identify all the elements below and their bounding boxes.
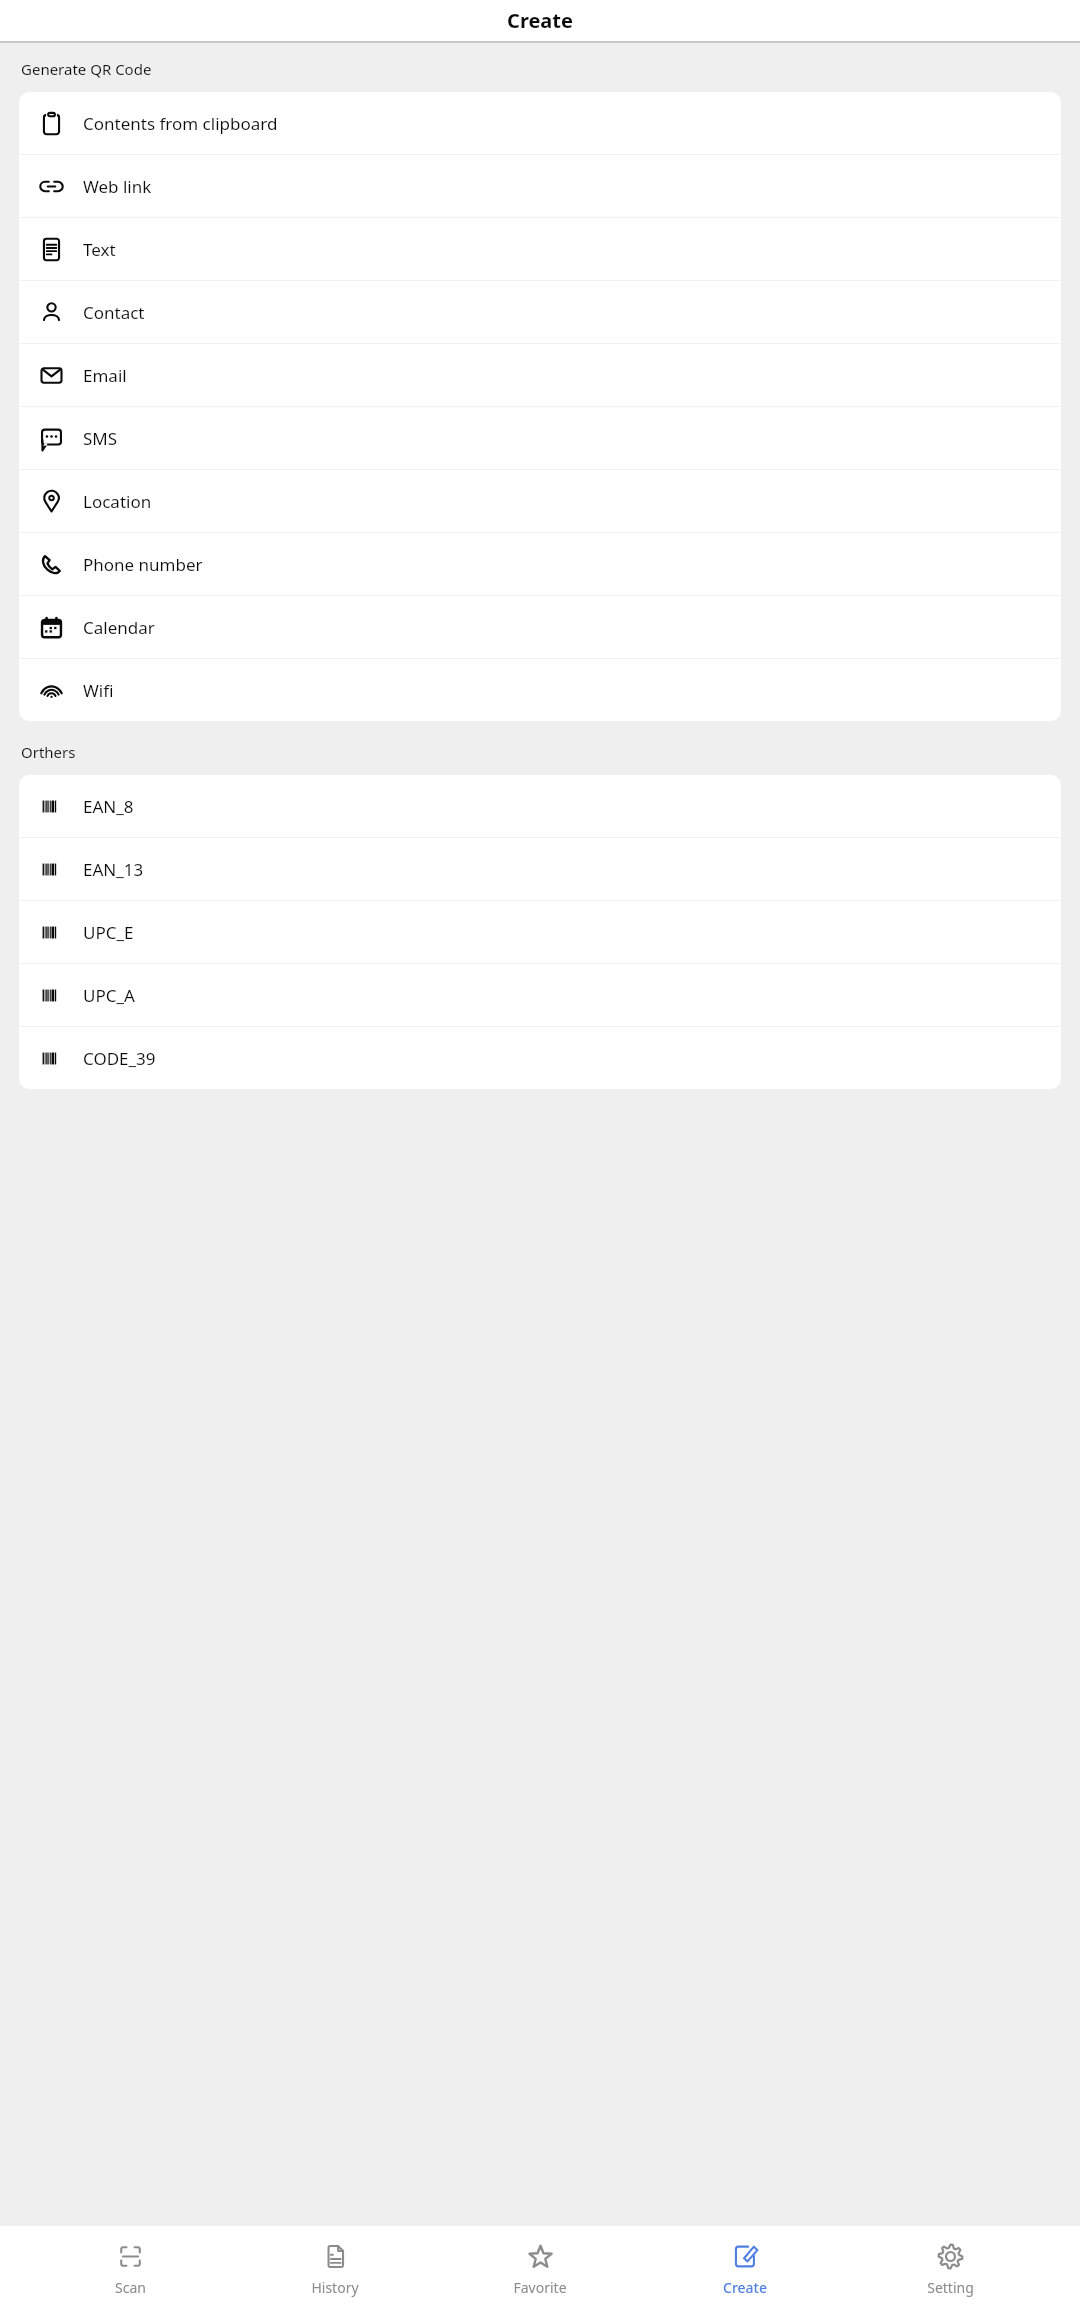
button[interactable]: Email (19, 344, 1061, 406)
staticText: Contact (83, 301, 145, 324)
staticText: Contents from clipboard (83, 112, 278, 135)
button[interactable]: Calendar (19, 596, 1061, 658)
staticText: SMS (83, 427, 118, 450)
staticText: UPC_A (83, 984, 135, 1007)
button[interactable]: Favorite (465, 2242, 615, 2297)
button[interactable]: EAN_13 (19, 838, 1061, 900)
button[interactable]: EAN_8 (19, 775, 1061, 837)
button[interactable]: SMS (19, 407, 1061, 469)
button[interactable]: Contents from clipboard (19, 92, 1061, 154)
button[interactable]: Web link (19, 155, 1061, 217)
staticText: Orthers (21, 742, 76, 762)
button[interactable]: Location (19, 470, 1061, 532)
button[interactable]: Text (19, 218, 1061, 280)
button[interactable]: UPC_A (19, 964, 1061, 1026)
staticText: Phone number (83, 553, 203, 576)
staticText: Web link (83, 175, 152, 198)
button[interactable]: Wifi (19, 659, 1061, 721)
staticText: Setting (927, 2278, 974, 2297)
staticText: EAN_8 (83, 795, 134, 818)
staticText: Location (83, 490, 152, 513)
staticText: Calendar (83, 616, 155, 639)
button[interactable]: Create (670, 2242, 820, 2297)
staticText: History (311, 2278, 359, 2297)
button[interactable]: CODE_39 (19, 1027, 1061, 1089)
button[interactable]: Contact (19, 281, 1061, 343)
staticText: Scan (115, 2278, 146, 2297)
staticText: Create (723, 2278, 767, 2297)
button[interactable]: History (260, 2242, 410, 2297)
staticText: Text (83, 238, 116, 261)
staticText: CODE_39 (83, 1047, 156, 1070)
staticText: Favorite (513, 2278, 567, 2297)
staticText: Wifi (83, 679, 114, 702)
staticText: UPC_E (83, 921, 134, 944)
button[interactable]: UPC_E (19, 901, 1061, 963)
staticText: EAN_13 (83, 858, 144, 881)
button[interactable]: Setting (875, 2242, 1025, 2297)
button[interactable]: Scan (55, 2242, 205, 2297)
staticText: Create (507, 7, 573, 34)
staticText: Email (83, 364, 127, 387)
staticText: Generate QR Code (21, 59, 152, 79)
button[interactable]: Phone number (19, 533, 1061, 595)
